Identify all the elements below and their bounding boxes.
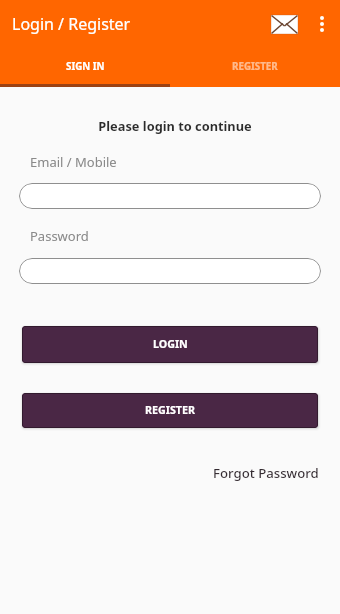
button[interactable]: REGISTER: [22, 393, 318, 428]
staticText: Password: [30, 227, 89, 245]
staticText: REGISTER: [232, 60, 278, 73]
button[interactable]: [19, 183, 321, 209]
staticText: SIGN IN: [66, 60, 105, 73]
button[interactable]: More options: [304, 6, 340, 42]
button[interactable]: Forgot Password: [213, 464, 319, 482]
button[interactable]: [19, 258, 321, 284]
button[interactable]: SIGN IN: [0, 48, 170, 87]
staticText: Please login to continue: [10, 117, 340, 134]
button[interactable]: LOGIN: [22, 326, 318, 363]
staticText: LOGIN: [153, 337, 188, 352]
staticText: Email / Mobile: [30, 153, 117, 171]
staticText: REGISTER: [145, 403, 195, 418]
button[interactable]: REGISTER: [170, 48, 340, 87]
staticText: Login / Register: [12, 13, 131, 35]
button[interactable]: Messages: [264, 4, 304, 44]
